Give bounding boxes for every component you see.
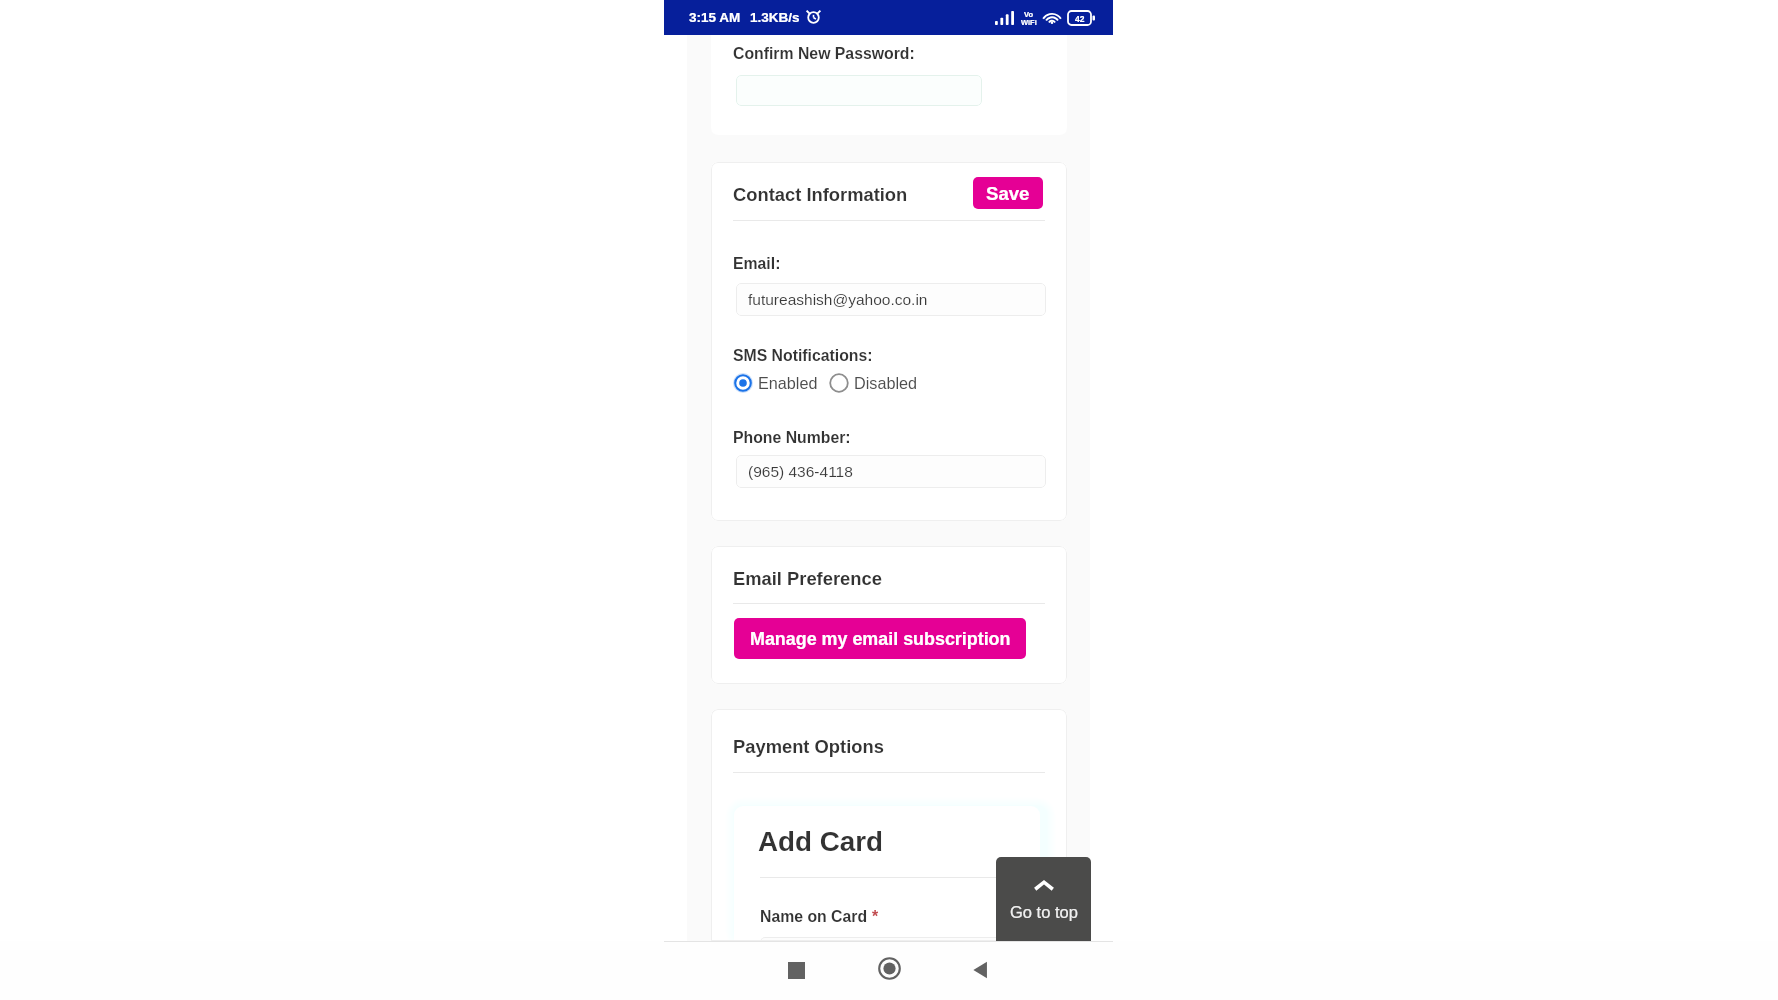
- staticText: Phone Number:: [733, 429, 851, 447]
- staticText: 3:15 AM: [689, 10, 741, 25]
- button[interactable]: Enabled: [733, 373, 818, 393]
- staticText: Add Card: [758, 826, 884, 857]
- staticText: Email:: [733, 255, 781, 273]
- button[interactable]: Confirm New Password input: [736, 75, 982, 106]
- button[interactable]: Home: [875, 954, 903, 982]
- button[interactable]: (965) 436-4118: [736, 455, 1046, 488]
- staticText: Disabled: [854, 374, 917, 392]
- button[interactable]: Back: [966, 956, 994, 984]
- staticText: Manage my email subscription: [750, 629, 1011, 649]
- staticText: (965) 436-4118: [748, 463, 853, 480]
- staticText: SMS Notifications:: [733, 347, 873, 365]
- staticText: Confirm New Password:: [733, 45, 915, 63]
- button[interactable]: Go to top: [996, 857, 1091, 941]
- button[interactable]: Disabled: [828, 372, 917, 394]
- staticText: Payment Options: [733, 736, 884, 757]
- staticText: Enabled: [758, 374, 818, 392]
- staticText: Go to top: [1010, 903, 1078, 921]
- staticText: *: [872, 908, 879, 926]
- staticText: 1.3KB/s: [750, 10, 800, 25]
- button[interactable]: Manage my email subscription: [734, 618, 1026, 659]
- staticText: Save: [986, 183, 1030, 204]
- staticText: Email Preference: [733, 568, 882, 589]
- staticText: 42: [1075, 14, 1085, 23]
- staticText: Name on Card: [760, 908, 872, 926]
- button[interactable]: futureashish@yahoo.co.in: [736, 283, 1046, 316]
- button[interactable]: Save: [973, 177, 1043, 209]
- staticText: Vo: [1024, 10, 1034, 18]
- button[interactable]: Recents: [782, 956, 810, 984]
- staticText: Contact Information: [733, 184, 908, 205]
- staticText: futureashish@yahoo.co.in: [748, 291, 928, 308]
- staticText: WiFi: [1021, 18, 1037, 26]
- button[interactable]: Name on Card input: [760, 937, 1024, 941]
